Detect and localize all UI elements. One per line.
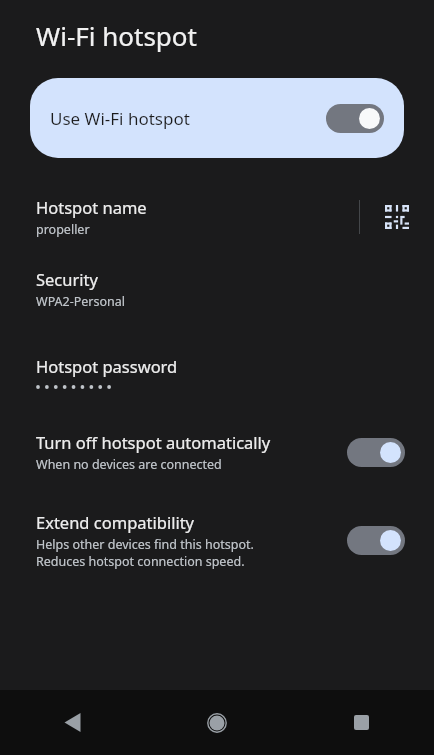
button[interactable]: Hotspot password	[0, 353, 434, 393]
staticText: propeller	[36, 221, 90, 238]
button[interactable]: Security	[0, 266, 434, 312]
button[interactable]: Extend compatibility	[0, 511, 434, 570]
button[interactable]: Hotspot name	[0, 192, 359, 242]
button[interactable]: Home	[144, 690, 289, 755]
button[interactable]: Turn off hotspot automatically	[347, 438, 405, 467]
button[interactable]: Extend compatibility	[347, 526, 405, 555]
staticText: WPA2-Personal	[36, 293, 126, 310]
button[interactable]: Back	[0, 690, 144, 755]
staticText: Helps other devices find this hotspot.	[36, 536, 254, 553]
staticText: Extend compatibility	[36, 511, 195, 533]
staticText: Turn off hotspot automatically	[36, 431, 271, 453]
button[interactable]: Recent apps	[289, 690, 434, 755]
staticText: When no devices are connected	[36, 456, 222, 473]
button[interactable]: Use Wi-Fi hotspot	[30, 78, 404, 158]
staticText: Wi-Fi hotspot	[36, 18, 197, 53]
button[interactable]: Use Wi-Fi hotspot	[326, 104, 384, 133]
button[interactable]: Turn off hotspot automatically	[0, 431, 434, 473]
button[interactable]: Share hotspot QR code	[360, 186, 434, 248]
staticText: Hotspot password	[36, 355, 178, 377]
staticText: Reduces hotspot connection speed.	[36, 553, 245, 570]
staticText: Security	[36, 268, 98, 290]
staticText: Hotspot name	[36, 196, 147, 218]
staticText: Use Wi-Fi hotspot	[50, 107, 326, 130]
